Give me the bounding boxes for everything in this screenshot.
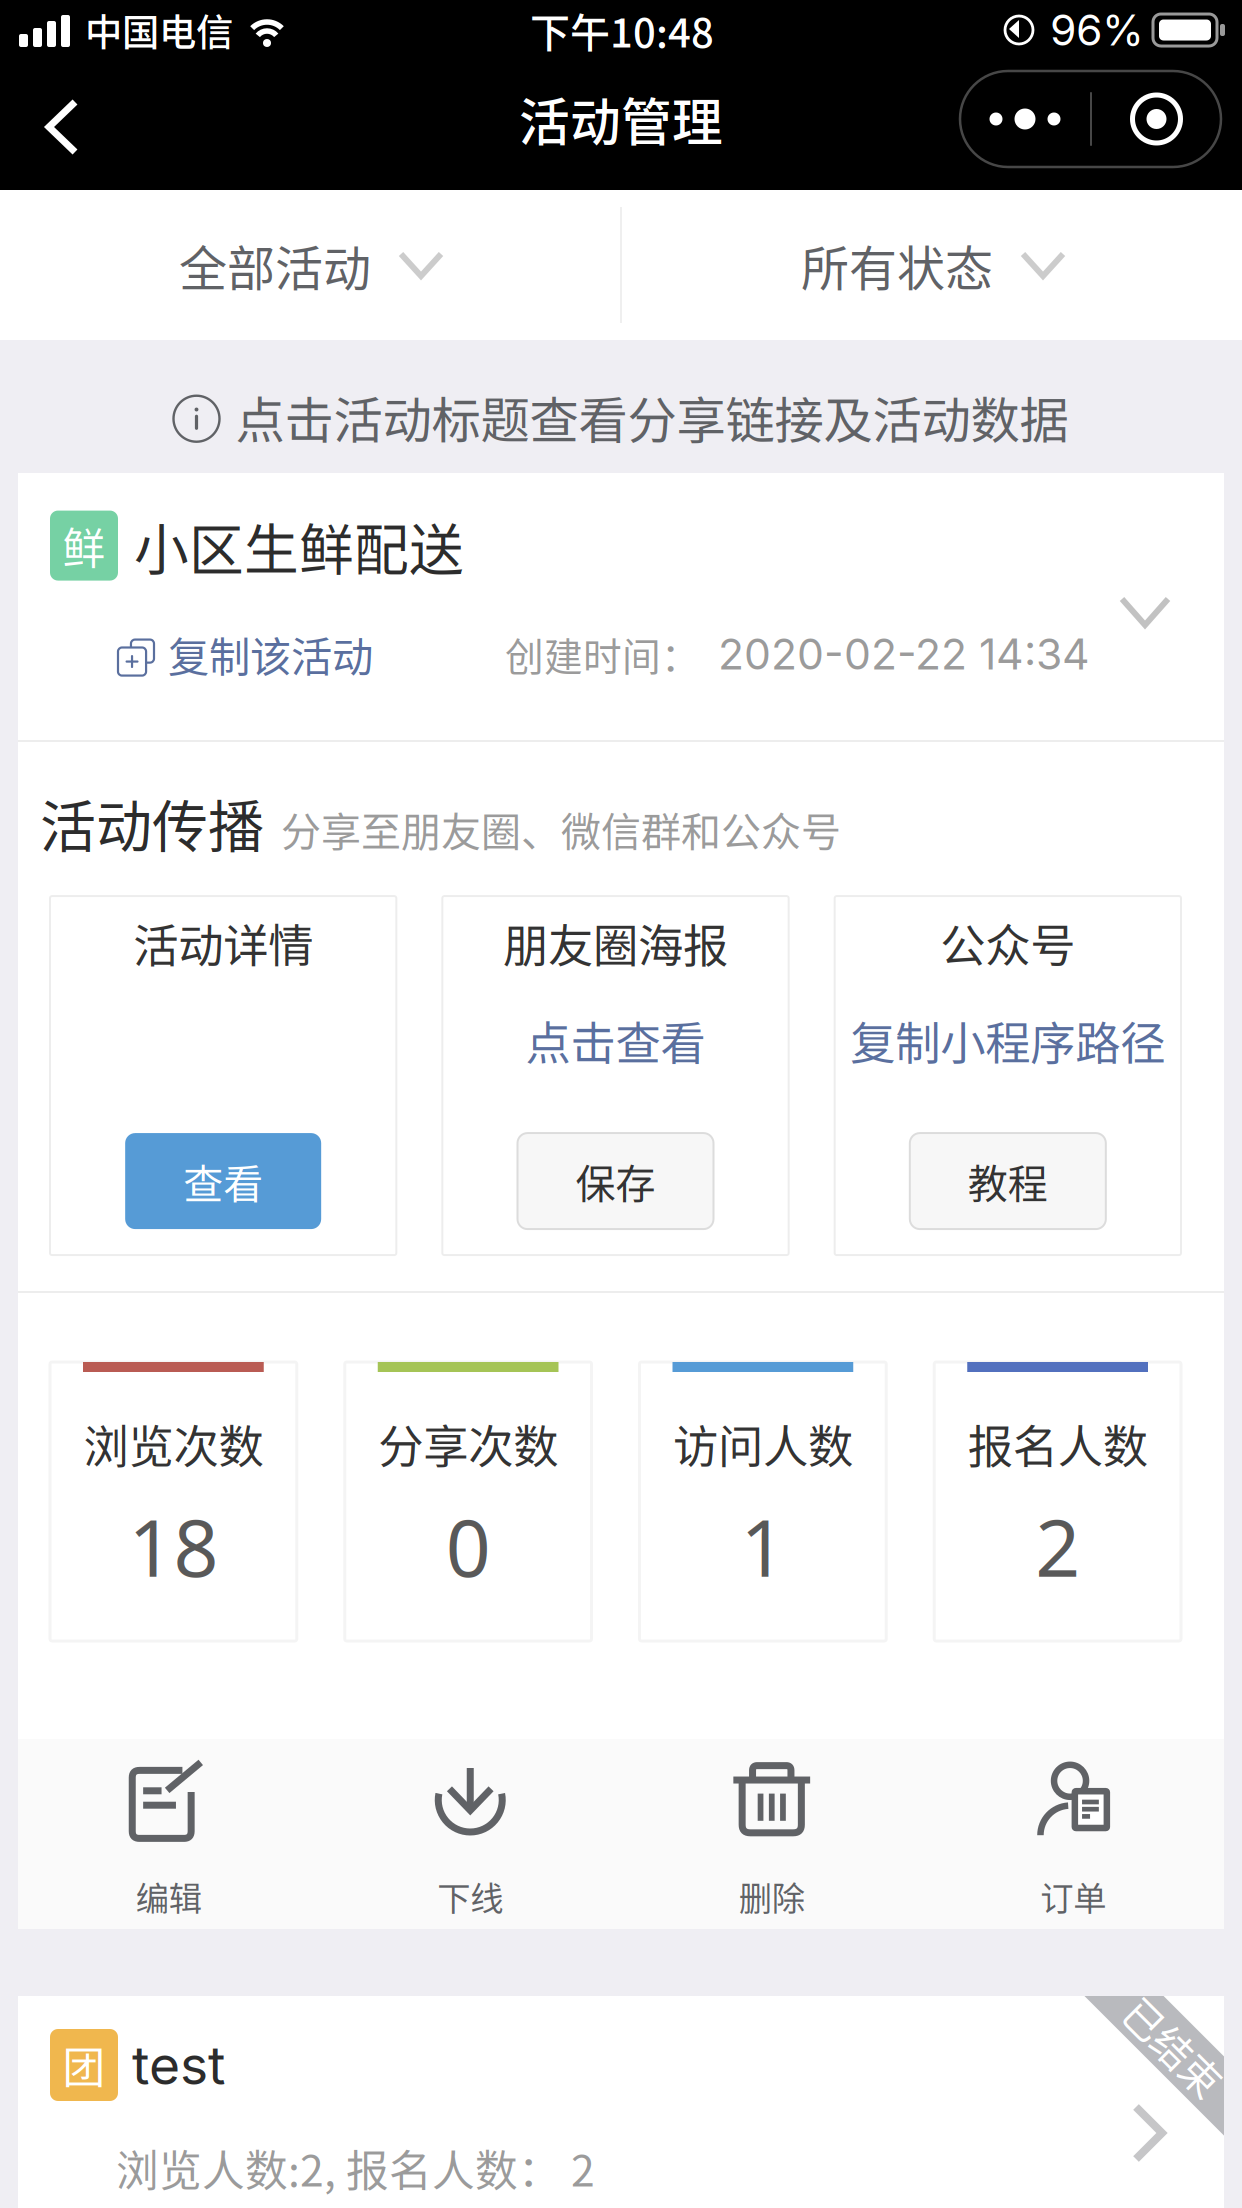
staticText: 点击活动标题查看分享链接及活动数据	[235, 381, 1068, 452]
staticText: 下午10:48	[530, 1, 714, 59]
staticText: 点击查看	[525, 1008, 705, 1073]
staticText: 小区生鲜配送	[134, 506, 464, 585]
staticText: 创建时间：	[505, 626, 700, 682]
staticText: 朋友圈海报	[503, 910, 728, 976]
staticText: 已结束	[1114, 2017, 1234, 2075]
staticText: test	[132, 2033, 225, 2097]
button[interactable]: 下线	[319, 1739, 621, 1929]
button[interactable]: 更多	[960, 71, 1221, 167]
button[interactable]: 返回	[10, 67, 114, 171]
staticText: 18	[128, 1493, 218, 1600]
button[interactable]: 编辑	[18, 1739, 319, 1929]
button[interactable]: 教程	[910, 1133, 1106, 1229]
staticText: 分享至朋友圈、微信群和公众号	[281, 800, 841, 858]
staticText: 删除	[739, 1872, 805, 1920]
staticText: 公众号	[940, 910, 1075, 976]
button[interactable]: 保存	[517, 1133, 713, 1229]
staticText: 活动管理	[519, 82, 723, 156]
staticText: 鲜	[62, 515, 105, 576]
staticText: 全部活动	[179, 230, 371, 300]
staticText: 分享次数	[378, 1411, 558, 1477]
button[interactable]: 订单	[922, 1739, 1224, 1929]
staticText: 复制小程序路径	[850, 1008, 1165, 1073]
button[interactable]: 全部活动	[0, 190, 620, 340]
button[interactable]: 所有状态	[622, 190, 1242, 340]
staticText: 报名人数	[968, 1411, 1148, 1477]
button[interactable]: 鲜	[18, 473, 1224, 740]
staticText: 团	[62, 2034, 105, 2096]
staticText: 中国电信	[85, 3, 233, 57]
staticText: 访问人数	[673, 1411, 853, 1477]
staticText: 复制该活动	[168, 624, 373, 684]
staticText: 96%	[1050, 4, 1144, 56]
staticText: 活动传播	[40, 782, 264, 863]
button[interactable]: 查看	[125, 1133, 321, 1229]
button[interactable]: 团	[18, 1996, 1224, 2208]
staticText: 2	[1035, 1493, 1080, 1600]
staticText: 订单	[1040, 1872, 1106, 1920]
staticText: 教程	[968, 1152, 1048, 1210]
staticText: 2020-02-22 14:34	[718, 628, 1090, 680]
staticText: 浏览次数	[83, 1411, 263, 1477]
staticText: 0	[446, 1493, 491, 1600]
staticText: 编辑	[136, 1872, 202, 1920]
button[interactable]: 删除	[621, 1739, 922, 1929]
staticText: 保存	[575, 1152, 655, 1210]
staticText: 1	[740, 1493, 785, 1600]
staticText: 浏览人数:2, 报名人数： 2	[116, 2137, 595, 2199]
staticText: 活动详情	[133, 910, 313, 976]
staticText: 下线	[437, 1872, 503, 1920]
staticText: 所有状态	[801, 230, 993, 300]
staticText: 查看	[183, 1152, 263, 1210]
